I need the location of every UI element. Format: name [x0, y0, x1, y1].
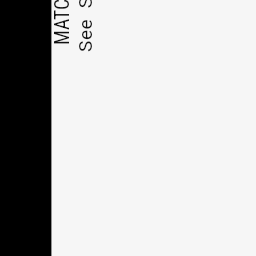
button[interactable]: See Sc: [74, 0, 96, 52]
button[interactable]: Match hero image: [0, 0, 52, 256]
button[interactable]: MATCH: [51, 0, 74, 45]
